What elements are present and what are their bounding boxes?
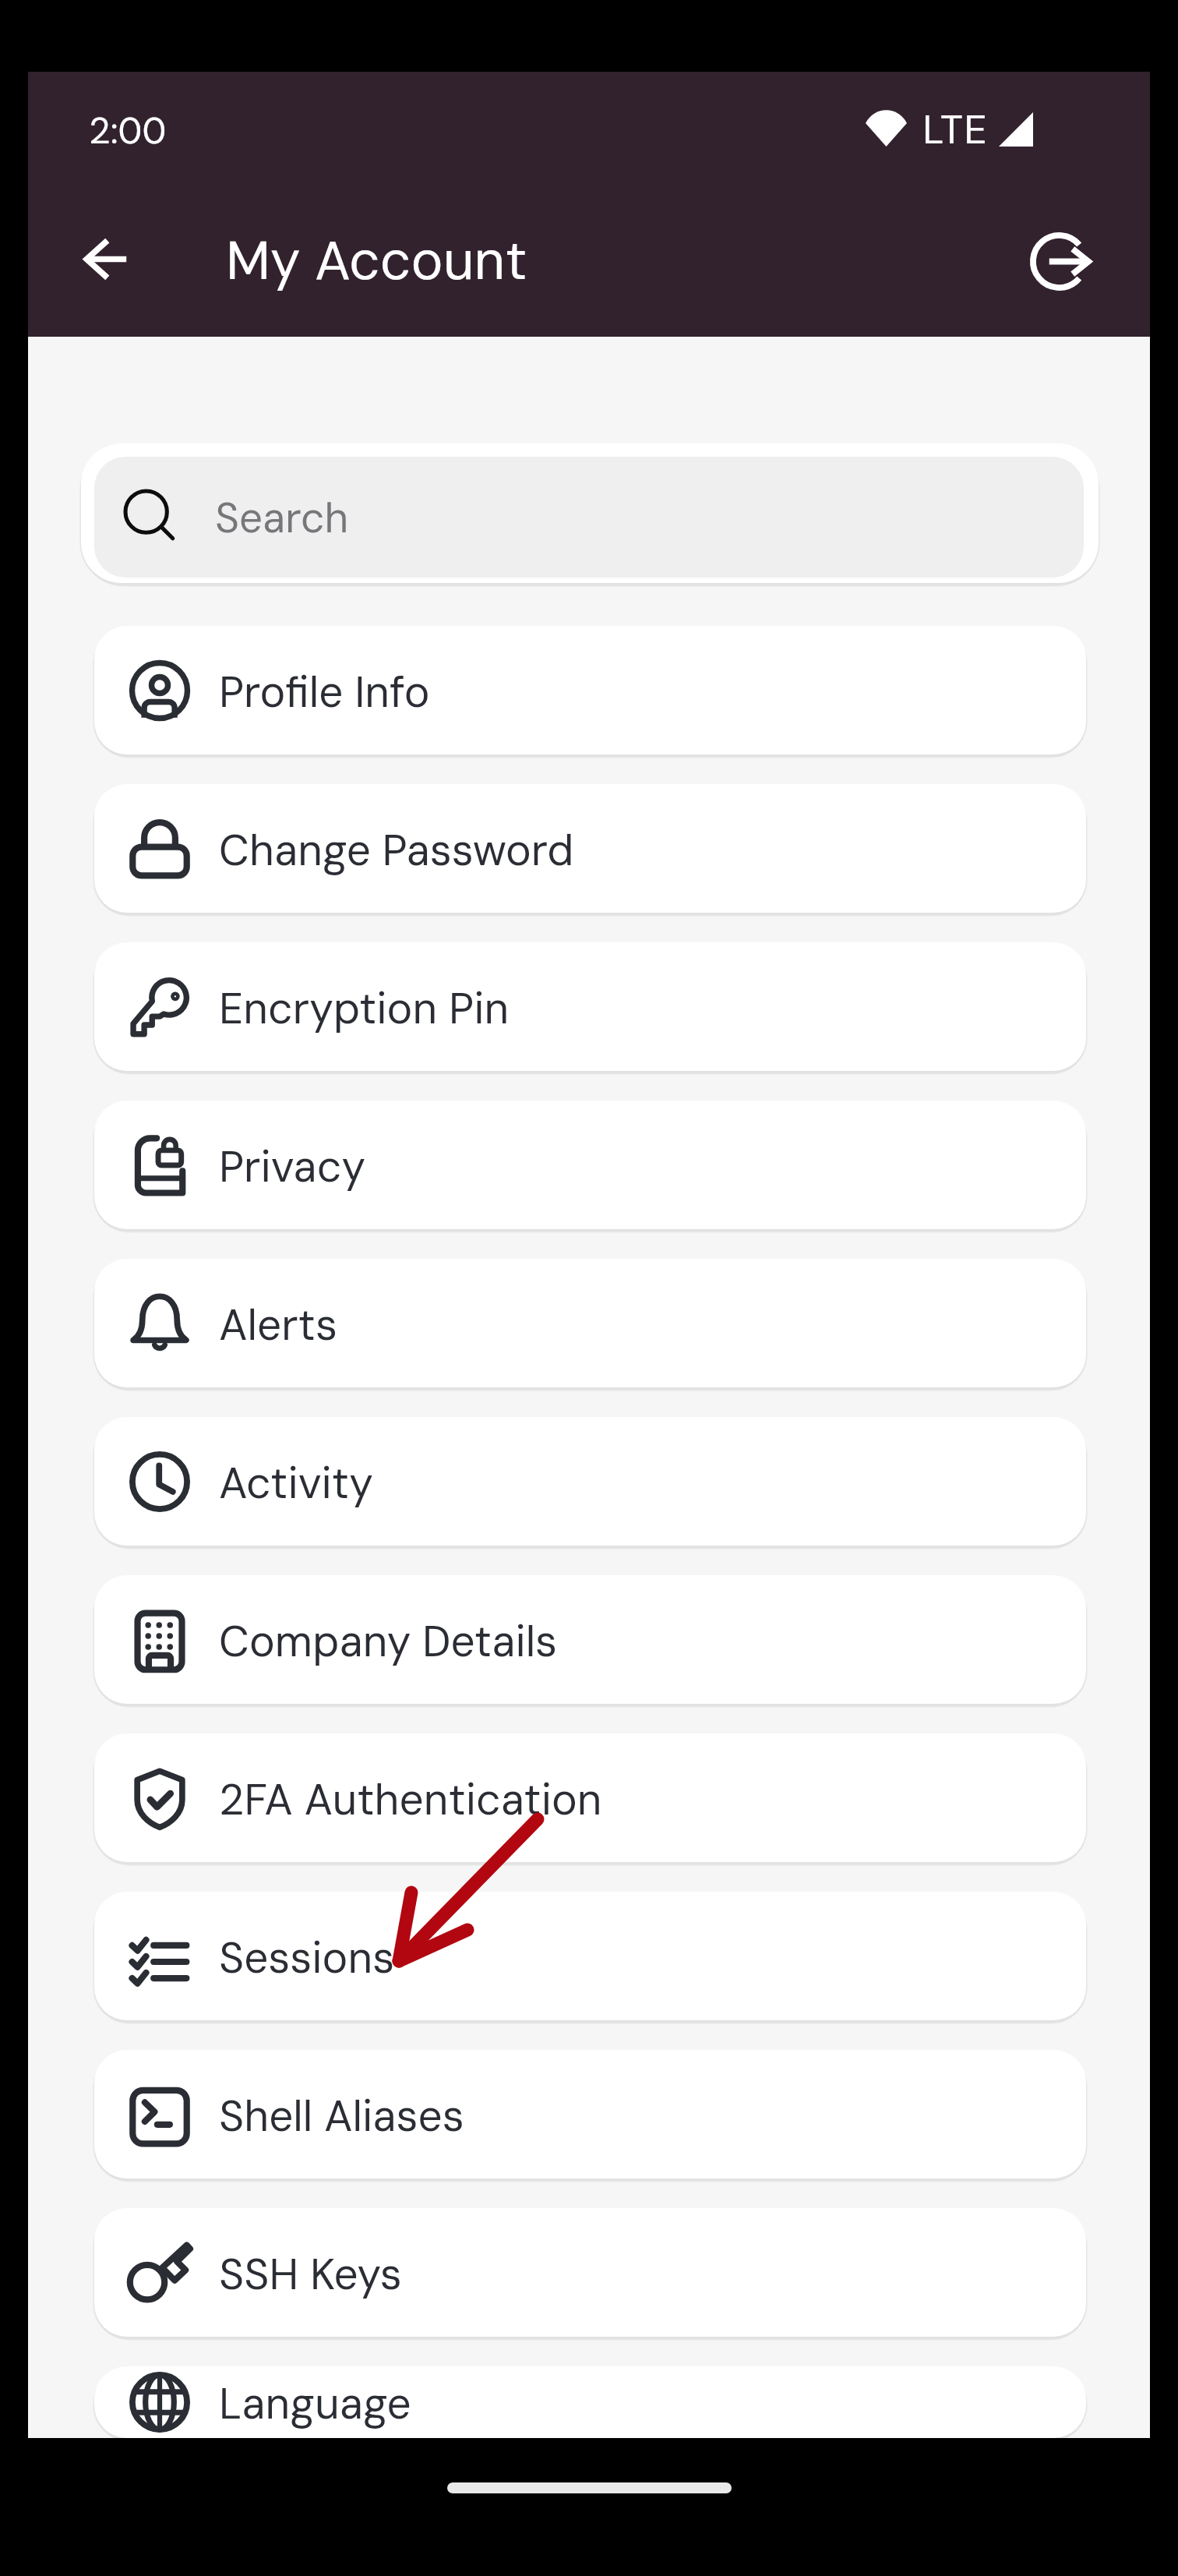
button[interactable]: Search [94, 457, 1084, 578]
button[interactable]: Company Details [94, 1575, 1086, 1704]
button[interactable]: Back [61, 214, 150, 303]
button[interactable]: SSH Keys [94, 2208, 1086, 2337]
staticText: 2:00 [89, 107, 167, 154]
button[interactable]: Language [94, 2366, 1086, 2438]
staticText: Shell Aliases [219, 2088, 464, 2144]
staticText: 2FA Authentication [219, 1772, 602, 1828]
button[interactable]: Sessions [94, 1892, 1086, 2020]
staticText: Company Details [219, 1613, 558, 1670]
staticText: Privacy [219, 1139, 366, 1195]
staticText: LTE [922, 103, 988, 156]
staticText: Language [219, 2376, 411, 2432]
staticText: Encryption Pin [219, 981, 510, 1037]
button[interactable]: Alerts [94, 1259, 1086, 1387]
staticText: Change Password [219, 822, 574, 878]
staticText: Activity [219, 1455, 373, 1511]
button[interactable]: 2FA Authentication [94, 1733, 1086, 1862]
staticText: Sessions [219, 1930, 395, 1986]
button[interactable]: Privacy [94, 1101, 1086, 1229]
button[interactable]: Activity [94, 1417, 1086, 1546]
staticText: Search [215, 491, 349, 545]
staticText: My Account [226, 226, 527, 296]
button[interactable]: Shell Aliases [94, 2050, 1086, 2178]
staticText: Alerts [219, 1297, 337, 1353]
button[interactable]: Change Password [94, 784, 1086, 913]
staticText: Profile Info [219, 664, 430, 720]
button[interactable]: Profile Info [94, 626, 1086, 754]
button[interactable]: Encryption Pin [94, 942, 1086, 1071]
staticText: SSH Keys [219, 2246, 402, 2302]
button[interactable]: Log out [1014, 217, 1103, 306]
